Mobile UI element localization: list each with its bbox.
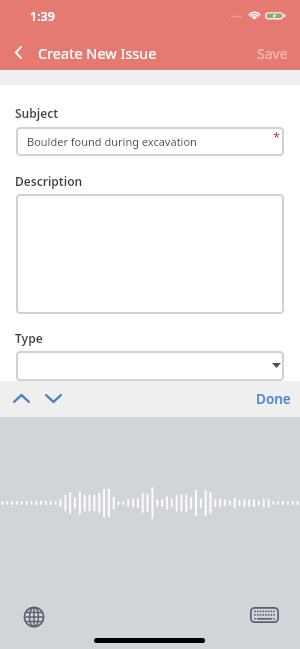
button[interactable] <box>16 351 284 381</box>
button[interactable] <box>16 194 284 314</box>
staticText: 1:39 <box>30 8 55 25</box>
staticText: Done <box>256 390 291 408</box>
button[interactable]: Back <box>0 32 36 70</box>
staticText: Type <box>15 330 43 346</box>
staticText: * <box>273 128 281 146</box>
button[interactable]: Save <box>243 32 300 70</box>
staticText: Description <box>15 173 83 189</box>
button[interactable]: Previous field <box>5 382 38 415</box>
button[interactable]: Boulder found during excavation <box>16 127 284 156</box>
button[interactable]: Show keyboard <box>245 599 283 630</box>
staticText: Save <box>257 44 288 63</box>
staticText: Boulder found during excavation <box>27 134 197 149</box>
button[interactable]: Change keyboard language <box>18 601 49 632</box>
button[interactable]: Done <box>242 381 300 417</box>
staticText: Create New Issue <box>38 43 157 63</box>
staticText: Subject <box>15 105 59 121</box>
button[interactable]: Next field <box>37 382 70 415</box>
